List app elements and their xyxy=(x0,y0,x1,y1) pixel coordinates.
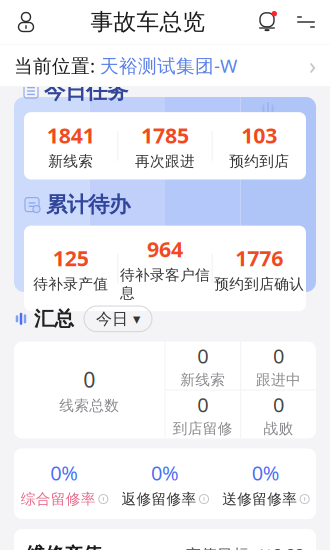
staticText: 预约到店 xyxy=(229,152,289,170)
button[interactable]: 0 xyxy=(165,342,240,389)
staticText: 964 xyxy=(147,235,183,263)
staticText: 综合留修率 xyxy=(21,490,96,508)
staticText: 0 xyxy=(197,391,208,418)
button[interactable]: 0 xyxy=(241,391,316,438)
staticText: 1841 xyxy=(47,121,95,149)
staticText: 事故车总览 xyxy=(90,8,205,36)
staticText: 再次跟进 xyxy=(135,152,195,170)
staticText: 0% xyxy=(151,459,179,486)
staticText: › xyxy=(309,50,316,80)
staticText: 0 xyxy=(273,391,284,418)
staticText: 0 xyxy=(273,342,284,369)
button[interactable]: 103 xyxy=(212,112,306,179)
button[interactable]: 964 xyxy=(118,226,212,311)
staticText: 0 xyxy=(83,365,95,394)
staticText: 汇总 xyxy=(34,306,74,331)
button[interactable]: 0% xyxy=(115,459,215,508)
staticText: 到店留修 xyxy=(173,420,233,438)
staticText: 新线索 xyxy=(48,152,93,170)
button[interactable]: Switch xyxy=(286,2,326,42)
staticText: 今日任务 xyxy=(44,78,128,104)
button[interactable]: 0 xyxy=(165,391,240,438)
staticText: 送修留修率 xyxy=(222,490,297,508)
staticText: 0% xyxy=(50,459,78,486)
button[interactable]: Profile xyxy=(4,2,48,42)
staticText: 产值目标: ￥0.00 xyxy=(185,544,304,550)
staticText: 103 xyxy=(241,121,277,149)
staticText: 1776 xyxy=(235,244,283,272)
button[interactable]: Notifications xyxy=(248,2,286,42)
staticText: 跟进中 xyxy=(256,371,301,389)
staticText: 待补录客户信息 xyxy=(120,266,210,302)
staticText: 当前位置: xyxy=(14,53,100,78)
staticText: 天裕测试集团-W xyxy=(100,53,237,78)
staticText: 125 xyxy=(53,244,89,272)
button[interactable]: 0% xyxy=(215,459,316,508)
staticText: 维修产值 xyxy=(26,543,102,550)
button[interactable]: 1841 xyxy=(24,112,117,179)
button[interactable]: 125 xyxy=(24,235,117,302)
button[interactable]: 0 xyxy=(14,342,165,438)
staticText: 0 xyxy=(197,342,208,369)
button[interactable]: 0 xyxy=(241,342,316,389)
staticText: 返修留修率 xyxy=(121,490,196,508)
staticText: 战败 xyxy=(264,420,294,438)
staticText: 今日 xyxy=(96,309,128,329)
staticText: 1785 xyxy=(141,121,189,149)
staticText: ▾ xyxy=(133,310,140,327)
staticText: 新线索 xyxy=(180,371,225,389)
button[interactable]: 0% xyxy=(14,459,115,508)
button[interactable]: 1785 xyxy=(118,112,212,179)
staticText: 累计待办 xyxy=(46,191,130,218)
staticText: 0% xyxy=(252,459,280,486)
staticText: 线索总数 xyxy=(59,397,119,415)
button[interactable]: 1776 xyxy=(212,235,306,302)
staticText: 待补录产值 xyxy=(33,275,108,293)
staticText: 预约到店确认 xyxy=(214,275,304,293)
button[interactable]: 今日 xyxy=(84,306,152,332)
button[interactable]: 当前位置: xyxy=(0,44,330,86)
